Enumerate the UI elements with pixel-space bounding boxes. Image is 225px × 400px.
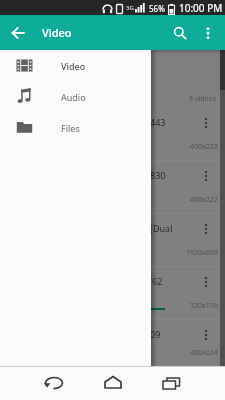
button[interactable] — [40, 369, 68, 397]
button[interactable]: Audio — [0, 81, 151, 112]
staticText: [Dual — [150, 222, 173, 234]
button[interactable] — [0, 15, 35, 50]
button[interactable]: 830 — [0, 161, 225, 214]
button[interactable]: Video — [0, 50, 151, 81]
staticText: 1920x800 — [186, 248, 218, 258]
button[interactable] — [165, 15, 195, 50]
staticText: 443 — [150, 116, 166, 128]
staticText: 56% — [149, 3, 165, 14]
staticText: 320x176 — [190, 301, 218, 311]
button[interactable]: 09 — [0, 320, 225, 366]
button[interactable]: [Dual — [0, 214, 225, 267]
staticText: 3 videos — [189, 94, 217, 104]
staticText: 830 — [150, 169, 166, 181]
staticText: Files — [61, 122, 80, 134]
staticText: 400x222 — [190, 142, 218, 152]
staticText: Audio — [61, 91, 86, 103]
button[interactable]: 443 — [0, 108, 225, 161]
staticText: 400x222 — [190, 195, 218, 205]
button[interactable]: Files — [0, 112, 151, 143]
staticText: 09 — [150, 328, 161, 340]
staticText: 400x224 — [190, 348, 218, 358]
button[interactable] — [197, 15, 219, 50]
staticText: '62 — [150, 275, 163, 287]
button[interactable]: '62 — [0, 267, 225, 320]
staticText: 10:00 PM — [179, 1, 223, 15]
button[interactable] — [157, 369, 185, 397]
button[interactable] — [99, 369, 127, 397]
staticText: Video — [61, 60, 86, 72]
staticText: 3G — [126, 4, 134, 12]
staticText: Video — [42, 25, 72, 40]
